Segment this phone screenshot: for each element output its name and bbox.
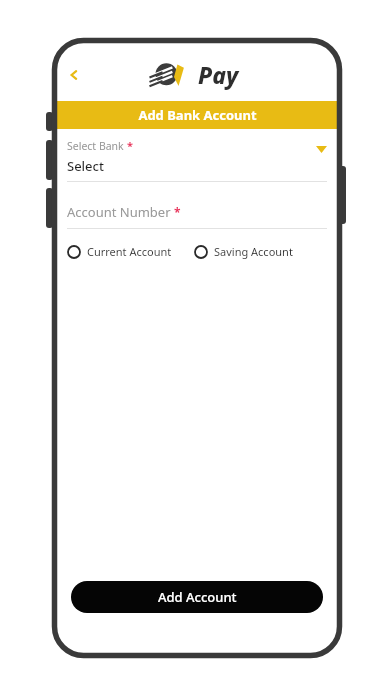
- button[interactable]: Saving Account: [194, 244, 293, 259]
- button[interactable]: Current Account: [67, 244, 172, 259]
- button[interactable]: Add Account: [71, 581, 323, 613]
- staticText: Add Bank Account: [138, 106, 257, 124]
- button[interactable]: Select Bank: [67, 138, 327, 182]
- staticText: Select Bank: [67, 139, 127, 153]
- button[interactable]: Account Number: [67, 203, 327, 229]
- staticText: Add Account: [158, 588, 237, 606]
- staticText: Current Account: [87, 244, 172, 259]
- staticText: Select: [67, 157, 104, 175]
- staticText: *: [174, 204, 181, 220]
- staticText: Saving Account: [214, 244, 293, 259]
- button[interactable]: Back: [61, 62, 87, 88]
- staticText: Account Number: [67, 203, 174, 221]
- staticText: Pay: [198, 59, 239, 90]
- staticText: *: [127, 138, 133, 153]
